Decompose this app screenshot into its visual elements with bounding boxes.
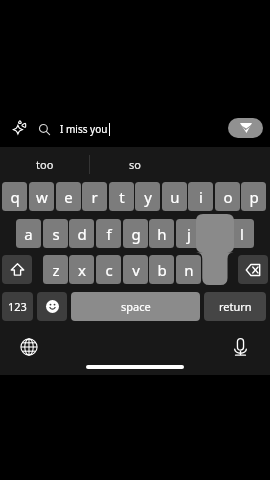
button[interactable]: e: [56, 182, 81, 211]
button[interactable]: i: [188, 182, 213, 211]
staticText: x: [78, 260, 86, 280]
button[interactable]: a: [16, 219, 41, 248]
staticText: space: [121, 299, 151, 314]
button[interactable]: z: [43, 255, 68, 284]
staticText: f: [106, 224, 112, 244]
button[interactable]: x: [69, 255, 94, 284]
staticText: t: [119, 187, 125, 207]
button[interactable]: b: [149, 255, 174, 284]
staticText: too: [36, 157, 54, 172]
button[interactable]: [37, 292, 67, 321]
button[interactable]: l: [229, 219, 254, 248]
staticText: I miss you: [60, 122, 108, 136]
staticText: y: [144, 187, 152, 207]
button[interactable]: [238, 255, 268, 284]
staticText: w: [36, 187, 48, 207]
button[interactable]: space: [71, 292, 200, 321]
button[interactable]: return: [204, 292, 266, 321]
staticText: o: [223, 187, 233, 207]
button[interactable]: AI assist: [8, 114, 32, 138]
staticText: so: [129, 157, 141, 172]
staticText: b: [157, 260, 167, 280]
button[interactable]: 123: [2, 292, 33, 321]
button[interactable]: v: [123, 255, 148, 284]
staticText: z: [52, 260, 60, 280]
staticText: n: [184, 260, 194, 280]
button[interactable]: h: [149, 219, 174, 248]
button[interactable]: r: [82, 182, 107, 211]
button[interactable]: so: [90, 147, 180, 182]
staticText: return: [219, 299, 252, 314]
staticText: p: [249, 187, 259, 207]
button[interactable]: u: [162, 182, 187, 211]
staticText: u: [170, 187, 180, 207]
staticText: i: [199, 187, 203, 207]
button[interactable]: t: [109, 182, 134, 211]
button[interactable]: g: [123, 219, 148, 248]
staticText: j: [187, 224, 191, 244]
button[interactable]: [2, 255, 32, 284]
button[interactable]: too: [0, 147, 89, 182]
staticText: l: [240, 224, 244, 244]
button[interactable]: d: [69, 219, 94, 248]
button[interactable]: s: [43, 219, 68, 248]
button[interactable]: q: [2, 182, 27, 211]
staticText: 123: [8, 299, 27, 314]
staticText: s: [52, 224, 60, 244]
staticText: g: [131, 224, 141, 244]
button[interactable]: w: [29, 182, 54, 211]
button[interactable]: y: [135, 182, 160, 211]
button[interactable]: j: [176, 219, 201, 248]
staticText: q: [10, 187, 20, 207]
button[interactable]: c: [96, 255, 121, 284]
button[interactable]: p: [241, 182, 266, 211]
staticText: r: [91, 187, 98, 207]
staticText: h: [157, 224, 167, 244]
staticText: v: [132, 260, 140, 280]
staticText: c: [105, 260, 113, 280]
staticText: e: [64, 187, 73, 207]
button[interactable]: n: [176, 255, 201, 284]
staticText: a: [24, 224, 33, 244]
button[interactable]: Send: [228, 118, 263, 138]
button[interactable]: o: [215, 182, 240, 211]
button[interactable]: Search: [31, 116, 55, 140]
button[interactable]: Change keyboard: [16, 334, 42, 360]
button[interactable]: Voice input: [227, 334, 253, 360]
button[interactable]: f: [96, 219, 121, 248]
staticText: d: [77, 224, 87, 244]
